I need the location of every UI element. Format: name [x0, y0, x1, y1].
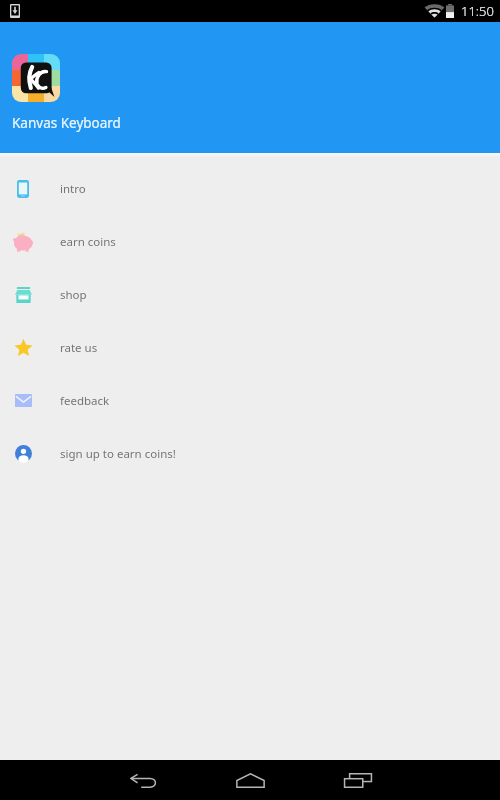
button[interactable]: Home	[220, 760, 280, 800]
staticText: rate us	[60, 340, 98, 356]
staticText: shop	[60, 287, 87, 303]
button[interactable]: Recent apps	[328, 760, 388, 800]
button[interactable]: feedback	[0, 374, 500, 427]
button[interactable]: intro	[0, 162, 500, 215]
staticText: feedback	[60, 393, 110, 409]
staticText: 11:50	[461, 2, 494, 20]
button[interactable]: rate us	[0, 321, 500, 374]
staticText: intro	[60, 181, 86, 197]
button[interactable]: sign up to earn coins!	[0, 427, 500, 480]
staticText: earn coins	[60, 234, 116, 250]
button[interactable]: Back	[114, 760, 174, 800]
staticText: sign up to earn coins!	[60, 446, 176, 462]
button[interactable]: earn coins	[0, 215, 500, 268]
staticText: Kanvas Keyboard	[12, 114, 121, 132]
button[interactable]: shop	[0, 268, 500, 321]
